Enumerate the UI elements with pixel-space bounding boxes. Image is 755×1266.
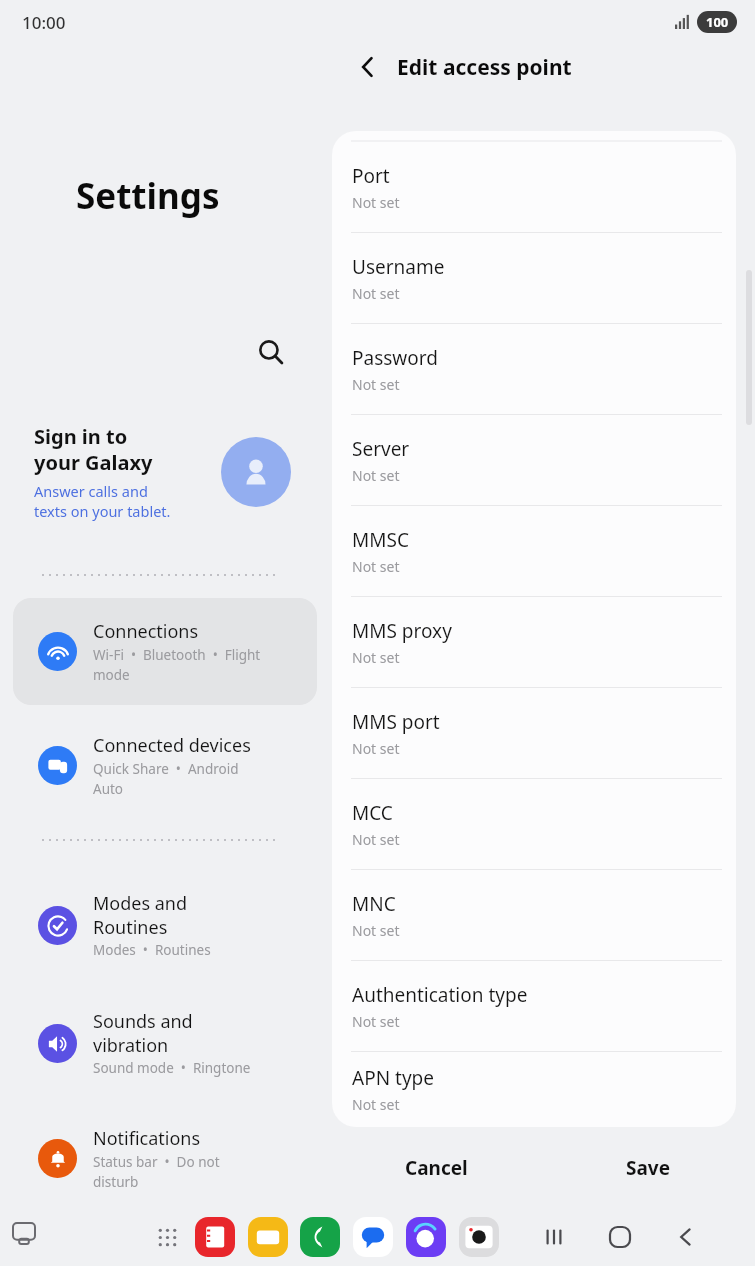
staticText: MMS port (352, 709, 440, 735)
staticText: Sign in to your Galaxy (34, 423, 153, 476)
staticText: Not set (352, 557, 400, 576)
staticText: MNC (352, 891, 396, 917)
staticText: Not set (352, 1012, 400, 1031)
button[interactable]: MMS port (332, 688, 736, 778)
staticText: Connections (93, 619, 199, 644)
button[interactable]: Sounds and vibration (13, 988, 317, 1098)
staticText: Quick Share • Android Auto (93, 760, 239, 798)
button[interactable]: Authentication type (332, 961, 736, 1051)
staticText: MCC (352, 800, 393, 826)
button[interactable]: Sign in to your Galaxy (0, 412, 330, 532)
staticText: Not set (352, 648, 400, 667)
staticText: Not set (352, 375, 400, 394)
staticText: Port (352, 163, 390, 189)
staticText: Connected devices (93, 733, 251, 758)
button[interactable]: Back (346, 45, 390, 89)
staticText: Modes and Routines (93, 891, 188, 939)
staticText: Settings (76, 172, 220, 220)
staticText: Password (352, 345, 438, 371)
staticText: Username (352, 254, 445, 280)
staticText: Sound mode • Ringtone (93, 1059, 251, 1077)
staticText: Not set (352, 921, 400, 940)
staticText: Not set (352, 739, 400, 758)
button[interactable]: App (298, 1215, 342, 1259)
staticText: Not set (352, 1095, 400, 1114)
button[interactable]: Apps (146, 1216, 188, 1258)
button[interactable]: Search (249, 330, 293, 374)
button[interactable]: Cancel (330, 1135, 542, 1201)
button[interactable]: Password (332, 324, 736, 414)
staticText: Modes • Routines (93, 941, 211, 959)
button[interactable]: Connections (13, 598, 317, 705)
staticText: Sounds and vibration (93, 1009, 193, 1057)
button[interactable]: Notifications (13, 1108, 317, 1208)
button[interactable]: MNC (332, 870, 736, 960)
staticText: Server (352, 436, 410, 462)
button[interactable]: Username (332, 233, 736, 323)
button[interactable]: MCC (332, 779, 736, 869)
button[interactable]: App (404, 1215, 448, 1259)
staticText: Answer calls and texts on your tablet. (34, 481, 171, 521)
staticText: Not set (352, 284, 400, 303)
button[interactable]: Back (663, 1214, 709, 1260)
button[interactable]: Modes and Routines (13, 870, 317, 980)
button[interactable]: MMS proxy (332, 597, 736, 687)
button[interactable]: App (246, 1215, 290, 1259)
button[interactable]: Connected devices (13, 715, 317, 815)
button[interactable]: Save (542, 1135, 755, 1201)
staticText: Save (626, 1155, 671, 1181)
staticText: 10:00 (22, 11, 66, 34)
button[interactable]: APN type (332, 1052, 736, 1127)
staticText: Status bar • Do not disturb (93, 1153, 220, 1191)
staticText: Authentication type (352, 982, 528, 1008)
button[interactable]: Recent apps panel (6, 1216, 42, 1252)
staticText: Not set (352, 466, 400, 485)
staticText: Cancel (405, 1155, 468, 1181)
button[interactable]: App (351, 1215, 395, 1259)
staticText: MMSC (352, 527, 409, 553)
button[interactable]: Server (332, 415, 736, 505)
button[interactable]: Home (597, 1214, 643, 1260)
staticText: 100 (706, 13, 729, 31)
staticText: Edit access point (397, 53, 572, 82)
button[interactable]: Recents (531, 1214, 577, 1260)
button[interactable]: Port (332, 142, 736, 232)
button[interactable]: App (193, 1215, 237, 1259)
staticText: Not set (352, 193, 400, 212)
staticText: Not set (352, 830, 400, 849)
staticText: APN type (352, 1065, 434, 1091)
button[interactable]: MMSC (332, 506, 736, 596)
staticText: Wi-Fi • Bluetooth • Flight mode (93, 646, 261, 684)
button[interactable]: App (457, 1215, 501, 1259)
staticText: Notifications (93, 1126, 201, 1151)
staticText: MMS proxy (352, 618, 452, 644)
